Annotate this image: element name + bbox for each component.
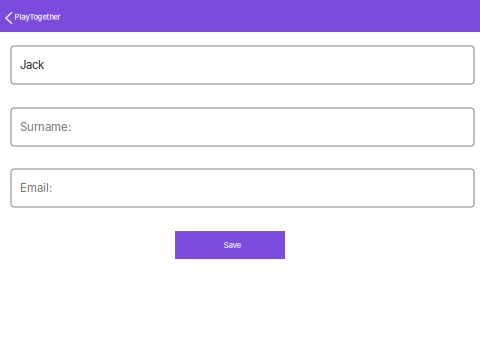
staticText: PlayTogether xyxy=(14,13,60,21)
button[interactable]: Jack xyxy=(11,46,474,84)
button[interactable]: Email: xyxy=(11,169,474,207)
button[interactable]: Back to PlayTogether xyxy=(0,0,68,32)
staticText: Email: xyxy=(20,181,52,195)
button[interactable]: Save xyxy=(175,231,285,259)
staticText: Surname: xyxy=(20,120,71,134)
staticText: Save xyxy=(223,240,241,250)
staticText: Jack xyxy=(20,58,44,72)
button[interactable]: Surname: xyxy=(11,108,474,146)
